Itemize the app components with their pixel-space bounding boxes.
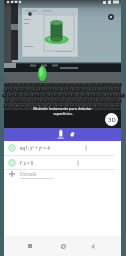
button[interactable]: f: z = 0 xyxy=(4,156,121,169)
staticText: eq1: x² + y² = 4 xyxy=(20,145,50,151)
button[interactable]: Tools xyxy=(66,128,79,141)
button[interactable]: Settings xyxy=(105,11,116,22)
staticText: Muévete lentamente para detectar xyxy=(33,106,92,111)
button[interactable]: Recents xyxy=(20,236,40,256)
button[interactable]: Entrada xyxy=(4,170,121,178)
button[interactable]: Toggle 3D view xyxy=(105,113,118,126)
button[interactable]: More options xyxy=(34,156,121,169)
button[interactable]: Algebra view xyxy=(50,128,70,141)
button[interactable]: More options xyxy=(50,141,121,155)
button[interactable]: Home xyxy=(53,236,73,256)
button[interactable]: eq1: x² + y² = 4 xyxy=(4,141,121,155)
staticText: Entrada xyxy=(20,171,37,177)
staticText: 3D xyxy=(108,116,116,124)
button[interactable]: Back xyxy=(83,236,103,256)
staticText: f: z = 0 xyxy=(20,160,34,166)
staticText: superficies. xyxy=(53,111,73,116)
